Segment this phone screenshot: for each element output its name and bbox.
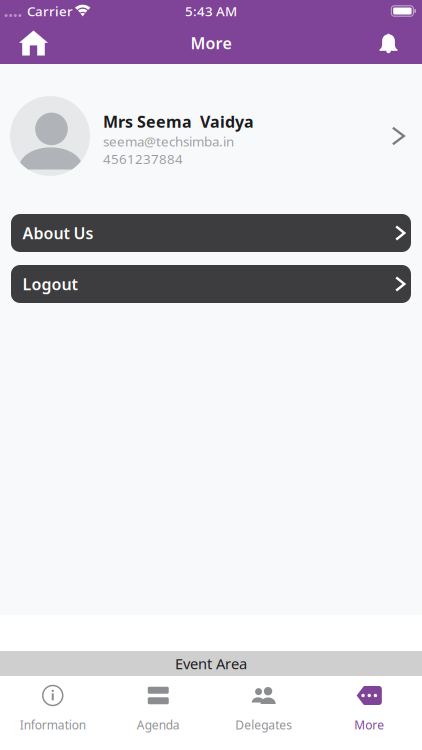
staticText: 4561237884: [103, 150, 183, 168]
staticText: More: [354, 717, 384, 733]
staticText: More: [190, 32, 231, 54]
button[interactable]: Agenda: [105, 676, 211, 750]
staticText: Agenda: [137, 717, 180, 733]
staticText: Delegates: [235, 717, 292, 733]
button[interactable]: Information: [0, 676, 105, 750]
staticText: About Us: [22, 222, 93, 244]
button[interactable]: Logout: [11, 265, 411, 303]
button[interactable]: More: [316, 676, 422, 750]
button[interactable]: Delegates: [211, 676, 316, 750]
button[interactable]: Mrs Seema Vaidya: [0, 96, 422, 176]
staticText: Information: [20, 717, 86, 733]
staticText: Logout: [22, 273, 77, 295]
button[interactable]: About Us: [11, 214, 411, 252]
button[interactable]: Notifications: [355, 22, 422, 64]
staticText: seema@techsimba.in: [103, 132, 234, 150]
staticText: Event Area: [175, 654, 247, 673]
staticText: Mrs Seema Vaidya: [103, 111, 254, 132]
staticText: Carrier: [27, 2, 73, 20]
staticText: 5:43 AM: [185, 2, 237, 20]
button[interactable]: Home: [0, 22, 67, 64]
